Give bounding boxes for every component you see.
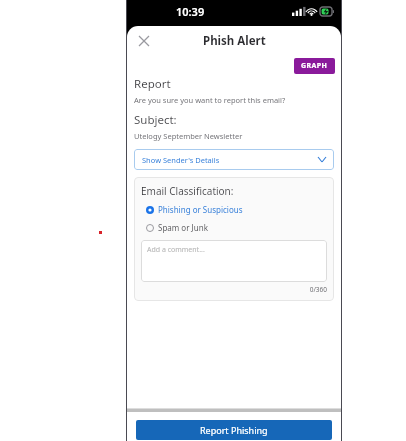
staticText: Report xyxy=(134,76,171,92)
button[interactable]: Add a comment... xyxy=(141,240,327,282)
staticText: 10:39 xyxy=(176,4,205,19)
staticText: Are you sure you want to report this ema… xyxy=(134,95,286,105)
staticText: Show Sender's Details xyxy=(142,155,318,165)
button[interactable]: GRAPH xyxy=(294,58,335,74)
staticText: Email Classification: xyxy=(141,184,234,198)
staticText: Report Phishing xyxy=(200,424,268,436)
staticText: Utelogy September Newsletter xyxy=(134,131,243,141)
button[interactable]: Spam or Junk xyxy=(141,220,327,235)
button[interactable]: Show Sender's Details xyxy=(134,149,334,170)
staticText: Add a comment... xyxy=(147,245,205,255)
button[interactable]: Close xyxy=(133,30,155,52)
button[interactable]: Phishing or Suspicious xyxy=(141,202,327,217)
staticText: Subject: xyxy=(134,112,177,128)
staticText: Phish Alert xyxy=(203,33,266,49)
staticText: Phishing or Suspicious xyxy=(158,204,243,215)
staticText: 0/360 xyxy=(141,285,327,294)
staticText: Spam or Junk xyxy=(158,222,208,233)
button[interactable]: Report Phishing xyxy=(136,420,332,440)
staticText: GRAPH xyxy=(301,61,328,71)
